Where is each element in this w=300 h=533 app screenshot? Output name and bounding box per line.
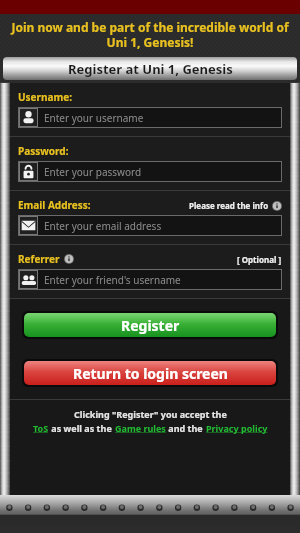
- staticText: and the: [166, 422, 206, 434]
- button[interactable]: Enter your password: [18, 161, 282, 182]
- staticText: Enter your friend's username: [44, 273, 181, 287]
- button[interactable]: Information: [272, 201, 282, 211]
- button[interactable]: Privacy policy: [206, 422, 268, 434]
- staticText: Return to login screen: [73, 364, 228, 383]
- button[interactable]: Enter your username: [18, 107, 282, 128]
- staticText: Join now and be part of the incredible w…: [8, 19, 292, 50]
- staticText: Enter your username: [44, 111, 144, 125]
- staticText: Referrer: [18, 252, 60, 266]
- button[interactable]: Register: [24, 313, 276, 337]
- button[interactable]: Game rules: [115, 422, 166, 434]
- staticText: Password:: [18, 144, 69, 158]
- button[interactable]: ToS: [33, 422, 49, 434]
- button[interactable]: Return to login screen: [24, 361, 276, 385]
- button[interactable]: Enter your friend's username: [18, 269, 282, 290]
- staticText: Email Address:: [18, 198, 91, 212]
- button[interactable]: Enter your email address: [18, 215, 282, 236]
- staticText: as well as the: [49, 422, 115, 434]
- staticText: Username:: [18, 90, 73, 104]
- staticText: [ Optional ]: [237, 254, 282, 265]
- staticText: Register at Uni 1, Genesis: [68, 60, 233, 78]
- staticText: Clicking "Register" you accept the: [74, 408, 227, 420]
- staticText: Enter your email address: [44, 219, 162, 233]
- staticText: Enter your password: [44, 165, 142, 179]
- button[interactable]: Information: [64, 254, 74, 264]
- staticText: Please read the info: [189, 200, 269, 211]
- staticText: Register: [121, 316, 180, 335]
